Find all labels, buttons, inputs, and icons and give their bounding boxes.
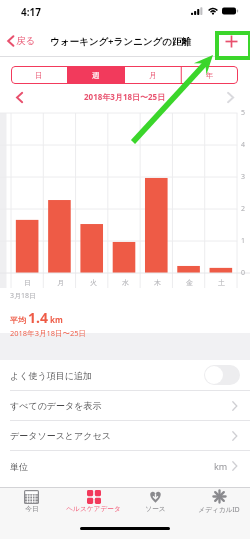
staticText: データソースとアクセス (10, 430, 111, 441)
staticText: 水 (122, 278, 129, 287)
button[interactable]: 次の週 (221, 88, 239, 106)
staticText: km (214, 460, 228, 472)
staticText: 今日 (25, 505, 39, 513)
staticText: 単位 (10, 461, 28, 472)
staticText: ソース (145, 505, 166, 513)
button[interactable]: データを追加 (220, 30, 242, 52)
staticText: km (50, 314, 63, 325)
staticText: メディカルID (198, 505, 240, 514)
button[interactable]: 年 (181, 66, 238, 84)
button[interactable]: メディカルID (187, 488, 250, 520)
staticText: すべてのデータを表示 (10, 400, 102, 411)
staticText: 年 (206, 71, 214, 80)
staticText: 3 (241, 172, 246, 182)
button[interactable]: 戻る (4, 32, 39, 50)
button[interactable]: 日 (11, 66, 67, 84)
staticText: 土 (218, 278, 225, 287)
button[interactable]: 月 (124, 66, 181, 84)
staticText: よく使う項目に追加 (10, 370, 92, 381)
button[interactable]: ヘルスケアデータ (62, 488, 124, 520)
button[interactable]: よく使う項目に追加 (0, 360, 250, 390)
button[interactable]: データソースとアクセス (0, 421, 250, 450)
button[interactable]: 前の週 (10, 88, 28, 106)
staticText: 3月18日 (10, 291, 37, 301)
staticText: 戻る (16, 35, 36, 47)
staticText: ヘルスケアデータ (66, 505, 121, 513)
button[interactable]: ソース (124, 488, 187, 520)
button[interactable]: 週 (67, 66, 124, 84)
staticText: 木 (154, 278, 161, 287)
staticText: 平均 (10, 315, 26, 325)
staticText: 1.4 (28, 308, 48, 327)
staticText: 2018年3月18日〜25日 (84, 91, 166, 102)
staticText: 月 (57, 278, 64, 287)
staticText: 日 (24, 278, 31, 287)
staticText: 日 (35, 71, 43, 80)
staticText: 5 (241, 108, 246, 118)
staticText: 4 (241, 140, 246, 150)
staticText: 2 (241, 204, 246, 214)
staticText: ウォーキング+ランニングの距離 (50, 35, 191, 48)
staticText: 月 (149, 71, 157, 80)
staticText: 金 (186, 278, 193, 287)
staticText: 週 (92, 71, 100, 80)
staticText: 1 (241, 236, 246, 246)
button[interactable]: 単位 (0, 451, 250, 481)
button[interactable]: すべてのデータを表示 (0, 391, 250, 420)
button[interactable]: 今日 (0, 488, 62, 520)
staticText: 2018年3月18日〜25日 (10, 328, 87, 338)
staticText: 火 (90, 278, 97, 287)
staticText: 0 (241, 268, 246, 278)
staticText: 4:17 (21, 5, 41, 19)
